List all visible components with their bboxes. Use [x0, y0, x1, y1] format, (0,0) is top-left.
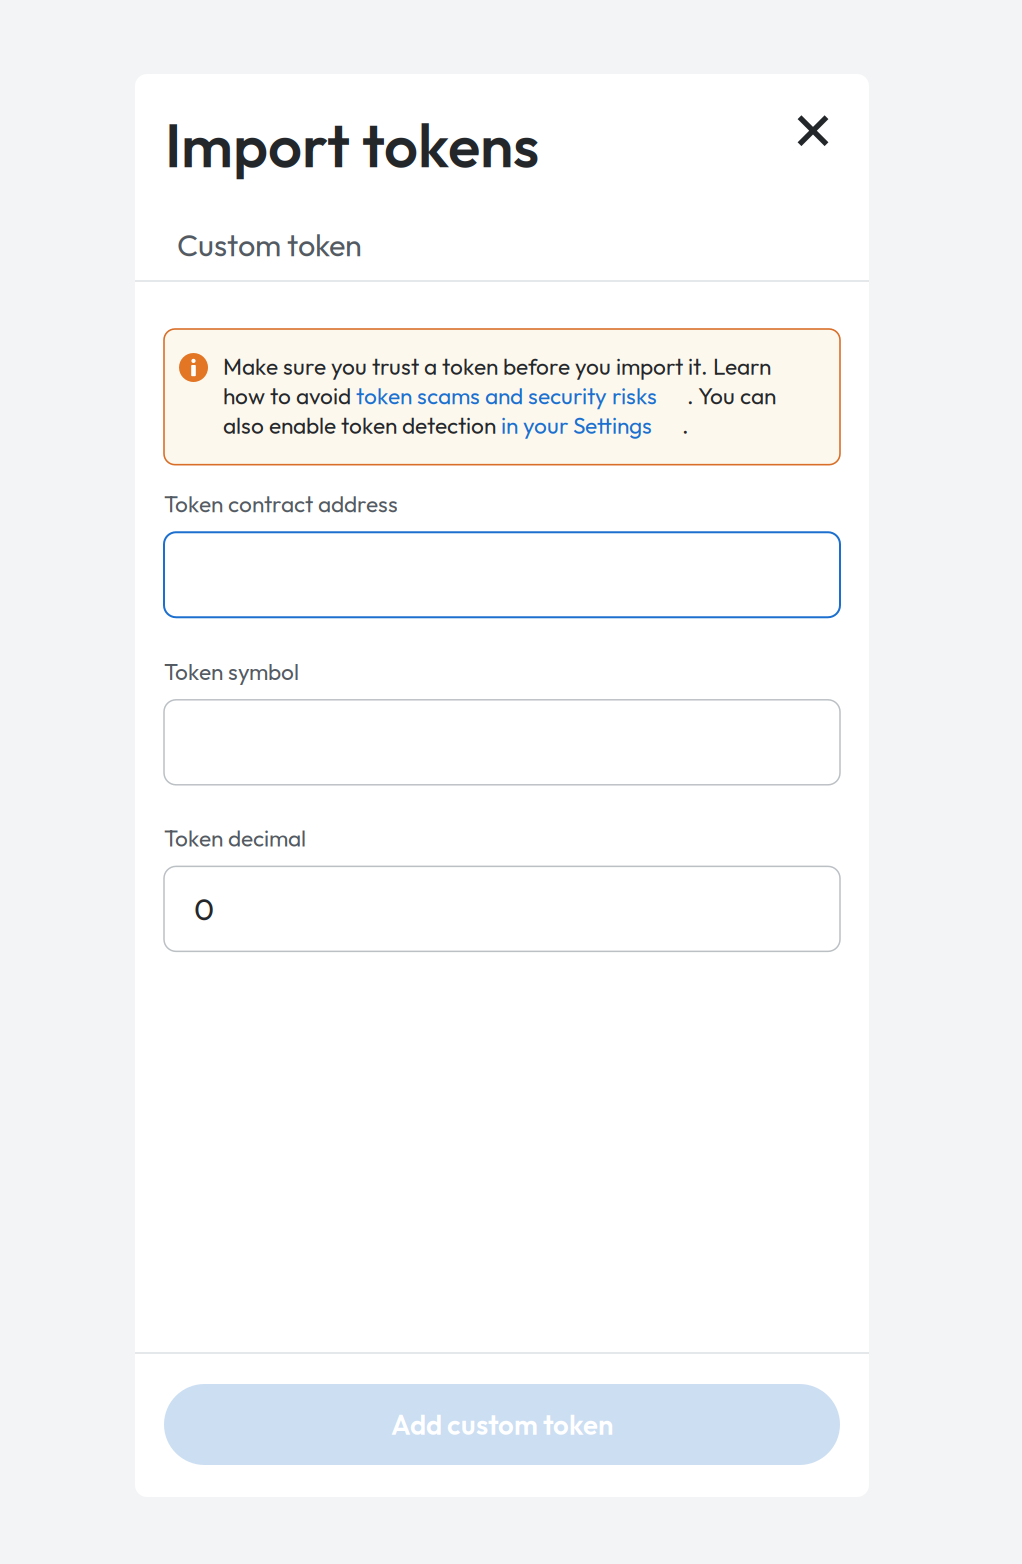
- staticText: Add custom token: [391, 1407, 613, 1442]
- staticText: .: [652, 411, 689, 440]
- staticText: also enable token detection: [223, 411, 501, 440]
- staticText: Token symbol: [164, 657, 299, 686]
- staticText: 0: [194, 889, 214, 928]
- button[interactable]: Custom token: [135, 214, 869, 280]
- staticText: Make sure you trust a token before you i…: [223, 352, 771, 381]
- staticText: Token contract address: [164, 490, 398, 518]
- staticText: Import tokens: [165, 107, 539, 183]
- staticText: how to avoid: [223, 382, 356, 410]
- staticText: token scams and security risks: [356, 382, 657, 410]
- button[interactable]: Close: [786, 105, 840, 171]
- staticText: . You can: [657, 382, 776, 410]
- staticText: Custom token: [177, 226, 362, 264]
- staticText: in your Settings: [501, 411, 652, 440]
- button[interactable]: Add custom token: [164, 1384, 840, 1465]
- staticText: Token decimal: [164, 824, 306, 852]
